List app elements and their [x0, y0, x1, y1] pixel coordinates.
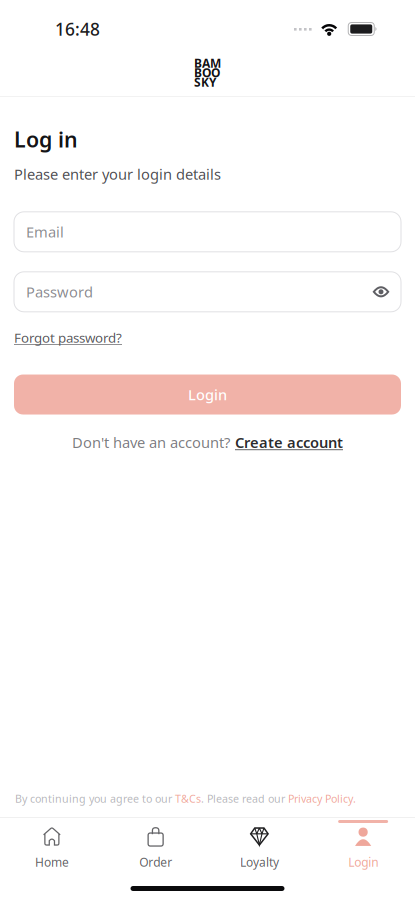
staticText: Please enter your login details	[14, 164, 221, 184]
staticText: SKY	[194, 74, 217, 90]
button[interactable]: Show password	[372, 285, 390, 298]
staticText: BOO	[194, 64, 220, 80]
staticText: 16:48	[55, 17, 100, 40]
staticText: Password	[26, 282, 93, 302]
staticText: Create account	[235, 432, 343, 452]
button[interactable]: T&Cs	[175, 791, 201, 806]
staticText: Login	[188, 385, 227, 404]
staticText: Login	[348, 854, 378, 870]
button[interactable]: Create account	[235, 432, 343, 452]
button[interactable]: Login	[311, 817, 415, 877]
button[interactable]: Privacy Policy.	[288, 791, 356, 806]
staticText: Log in	[14, 125, 78, 153]
staticText: Home	[35, 854, 69, 870]
button[interactable]: Order	[104, 817, 208, 877]
staticText: . Please read our	[201, 791, 288, 806]
staticText: Privacy Policy.	[288, 791, 356, 806]
button[interactable]: Email	[14, 212, 401, 252]
staticText: T&Cs	[175, 791, 201, 806]
button[interactable]: Home	[0, 817, 104, 877]
staticText: Email	[26, 222, 64, 242]
button[interactable]: Password	[14, 272, 401, 312]
button[interactable]: Login	[14, 374, 401, 414]
staticText: Order	[139, 854, 172, 870]
staticText: By continuing you agree to our	[15, 791, 175, 806]
button[interactable]: Forgot password?	[14, 329, 122, 346]
staticText: Loyalty	[240, 854, 279, 870]
button[interactable]: Loyalty	[207, 817, 311, 877]
staticText: Forgot password?	[14, 329, 122, 346]
staticText: Don't have an account?	[72, 432, 230, 452]
staticText: BAM	[194, 55, 221, 71]
